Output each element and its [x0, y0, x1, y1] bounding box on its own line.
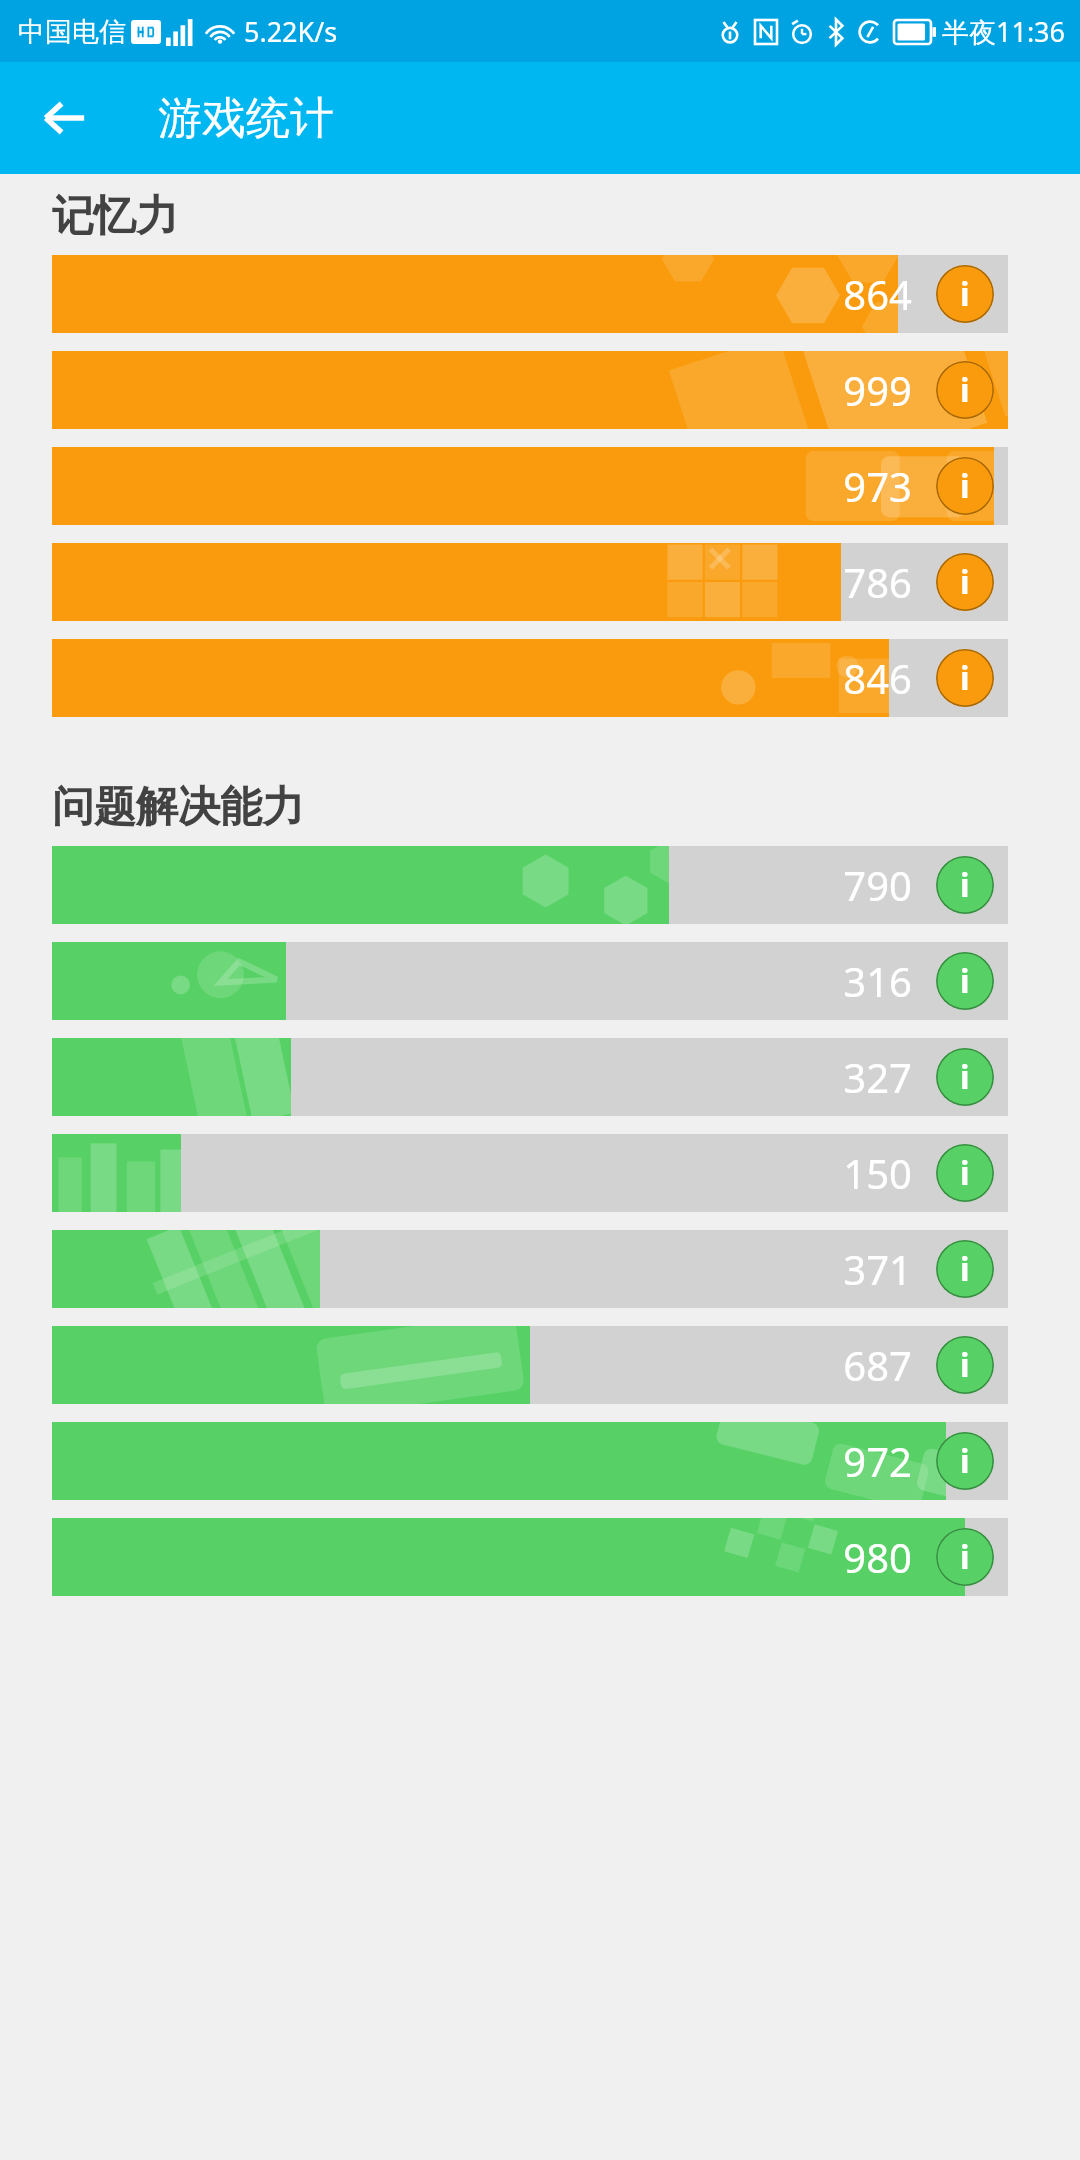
button[interactable]: Info 必经之路	[936, 1240, 994, 1298]
staticText: 973	[843, 459, 912, 513]
staticText: 864	[843, 267, 912, 321]
button[interactable]: 973	[52, 447, 1008, 525]
button[interactable]: 980	[52, 1518, 1008, 1596]
staticText: i	[960, 1535, 970, 1579]
staticText: i	[960, 1439, 970, 1483]
staticText: i	[960, 368, 970, 412]
staticText: 999	[843, 363, 912, 417]
button[interactable]: Info 过目不忘	[936, 457, 994, 515]
staticText: 371	[843, 1242, 912, 1296]
button[interactable]: 864	[52, 255, 1008, 333]
button[interactable]: Info 天旋地转	[936, 265, 994, 323]
staticText: 327	[843, 1050, 912, 1104]
staticText: i	[960, 863, 970, 907]
button[interactable]: 846	[52, 639, 1008, 717]
staticText: i	[960, 464, 970, 508]
staticText: 316	[843, 954, 912, 1008]
button[interactable]: Info 去其糟粕	[936, 1048, 994, 1106]
staticText: 游戏统计	[158, 91, 334, 146]
button[interactable]: Back	[28, 82, 100, 154]
staticText: 786	[843, 555, 912, 609]
staticText: 150	[843, 1146, 912, 1200]
button[interactable]: 327	[52, 1038, 1008, 1116]
staticText: i	[960, 560, 970, 604]
staticText: 980	[843, 1530, 912, 1584]
button[interactable]: 150	[52, 1134, 1008, 1212]
staticText: 中国电信	[18, 15, 126, 49]
button[interactable]: 786	[52, 543, 1008, 621]
staticText: 问题解决能力	[52, 781, 304, 834]
button[interactable]: Info 从小到大	[936, 856, 994, 914]
staticText: i	[960, 959, 970, 1003]
staticText: i	[960, 1247, 970, 1291]
button[interactable]: Info 聚少成多	[936, 1432, 994, 1490]
staticText: 972	[843, 1434, 912, 1488]
button[interactable]: 972	[52, 1422, 1008, 1500]
staticText: 记忆力	[52, 190, 178, 243]
button[interactable]: Info 保护地球	[936, 952, 994, 1010]
button[interactable]: Info 城堡拼图	[936, 1144, 994, 1202]
button[interactable]: 999	[52, 351, 1008, 429]
staticText: i	[960, 1055, 970, 1099]
staticText: i	[960, 656, 970, 700]
button[interactable]: 790	[52, 846, 1008, 924]
button[interactable]: Info 手疾眼快	[936, 361, 994, 419]
button[interactable]: Info 马赛逻辑	[936, 1528, 994, 1586]
staticText: 5.22K/s	[244, 13, 338, 50]
staticText: i	[960, 272, 970, 316]
button[interactable]: 316	[52, 942, 1008, 1020]
button[interactable]: Info 精打细算	[936, 1336, 994, 1394]
button[interactable]: 371	[52, 1230, 1008, 1308]
staticText: 687	[843, 1338, 912, 1392]
button[interactable]: Info 银海生花	[936, 649, 994, 707]
staticText: 790	[843, 858, 912, 912]
staticText: i	[960, 1151, 970, 1195]
button[interactable]: Info 还原色块	[936, 553, 994, 611]
staticText: i	[960, 1343, 970, 1387]
staticText: 846	[843, 651, 912, 705]
button[interactable]: 687	[52, 1326, 1008, 1404]
staticText: 半夜11:36	[942, 13, 1066, 50]
